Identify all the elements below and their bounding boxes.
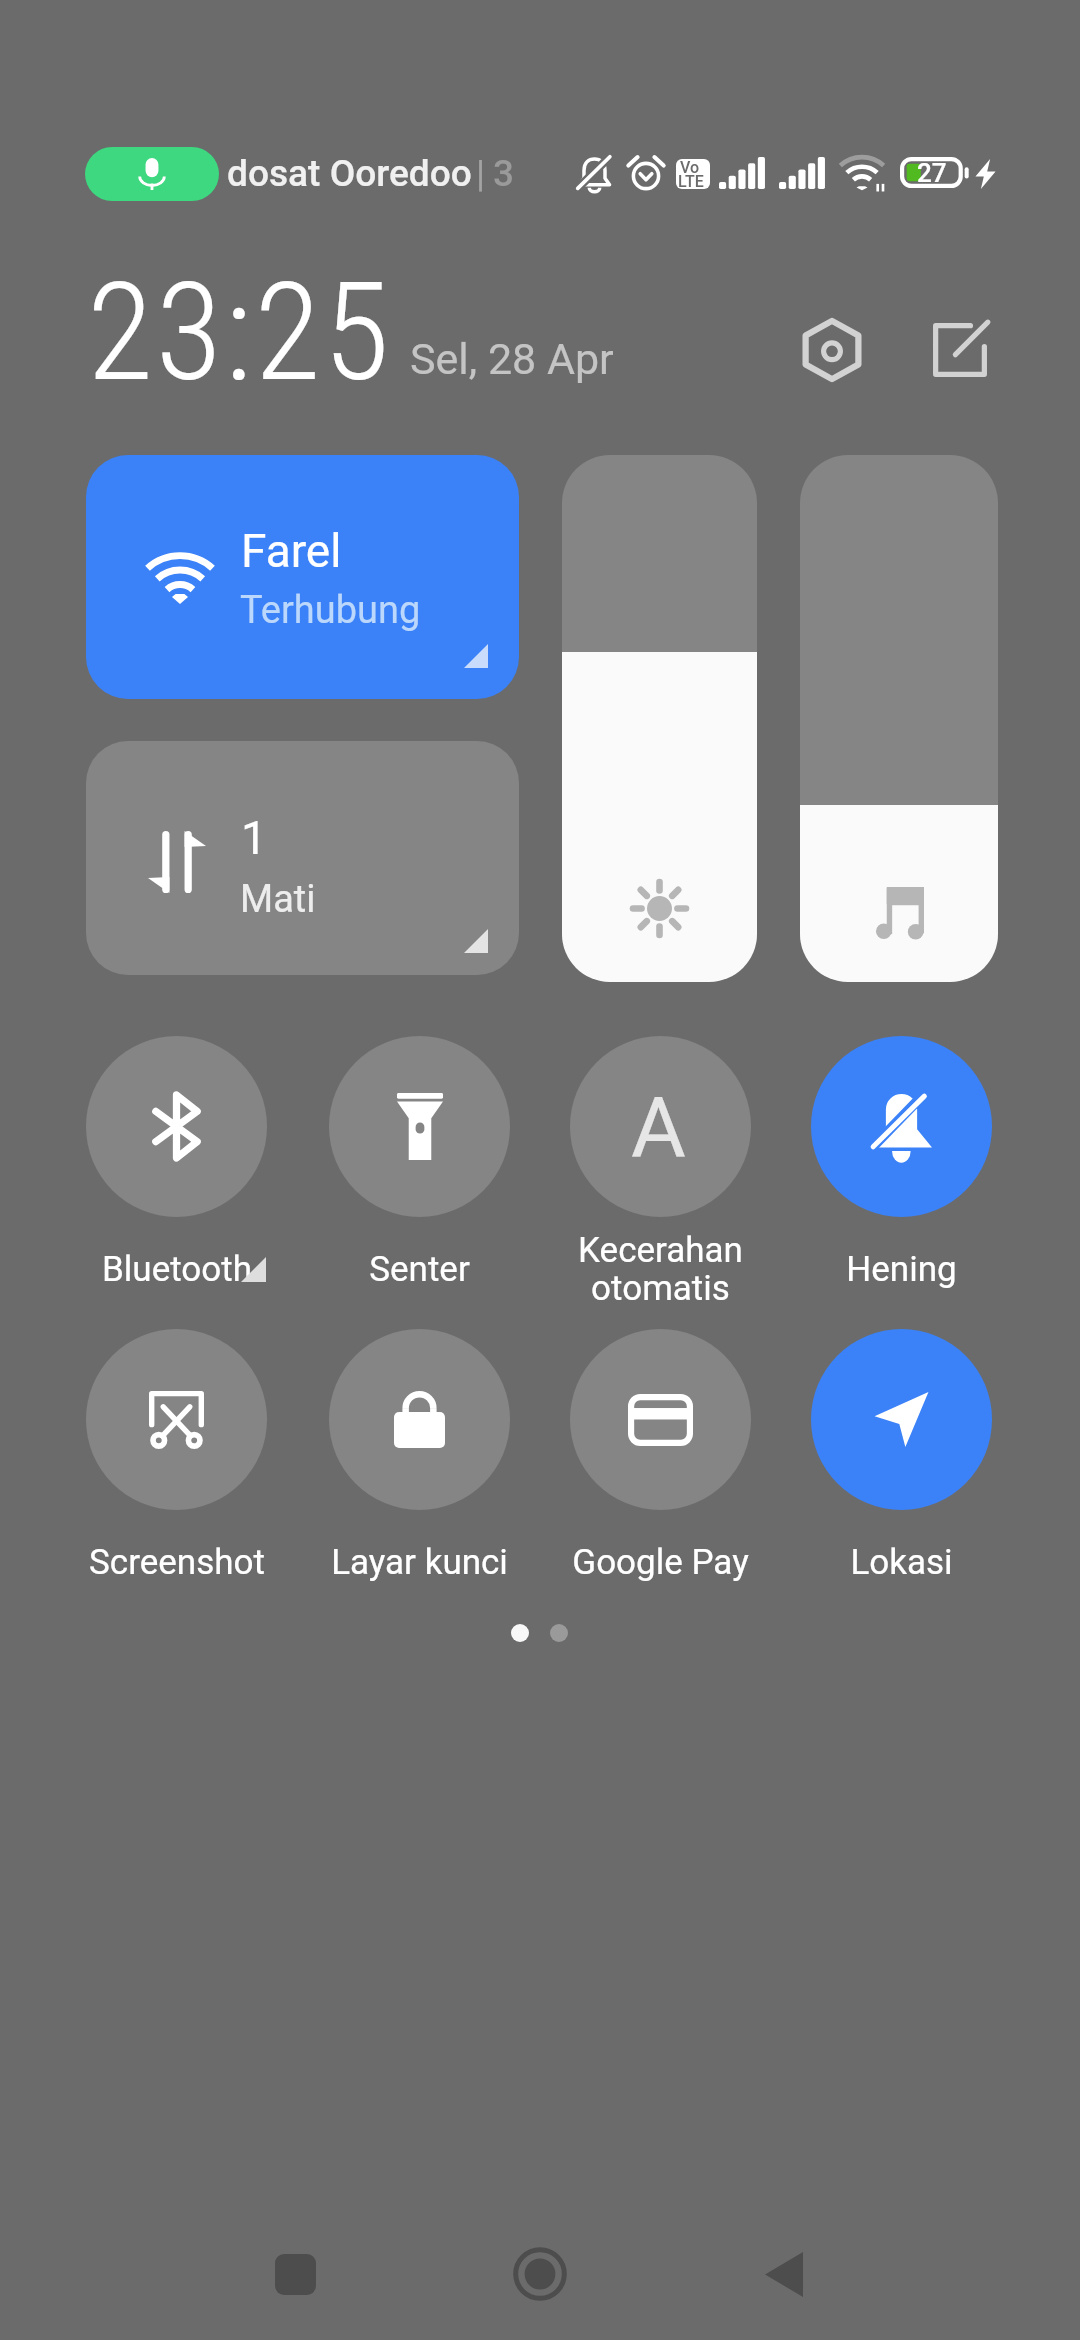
- staticText: Hening: [846, 1249, 957, 1290]
- staticText: |: [476, 152, 486, 195]
- staticText: Layar kunci: [331, 1542, 508, 1583]
- button[interactable]: Brightness: [562, 455, 757, 982]
- button[interactable]: Hening: [804, 1036, 999, 1337]
- staticText: Lokasi: [850, 1542, 953, 1583]
- button[interactable]: 1: [86, 741, 519, 975]
- button[interactable]: Home: [480, 2214, 600, 2334]
- staticText: 23:25: [87, 253, 392, 412]
- button[interactable]: Volume: [800, 455, 998, 982]
- button[interactable]: Edit: [924, 314, 996, 386]
- staticText: Kecerahan otomatis: [578, 1230, 743, 1309]
- staticText: Bluetooth: [102, 1249, 252, 1290]
- button[interactable]: Screenshot: [79, 1329, 274, 1630]
- button[interactable]: Senter: [322, 1036, 517, 1337]
- button[interactable]: Kecerahan otomatis: [563, 1036, 758, 1337]
- button[interactable]: Back: [724, 2214, 844, 2334]
- staticText: 1: [241, 811, 267, 865]
- staticText: Terhubung: [240, 588, 421, 633]
- button[interactable]: Settings: [796, 314, 868, 386]
- button[interactable]: Google Pay: [563, 1329, 758, 1630]
- staticText: Vo: [680, 159, 700, 177]
- staticText: Senter: [369, 1249, 470, 1290]
- button[interactable]: Microphone in use: [85, 147, 219, 201]
- button[interactable]: Recents: [235, 2214, 355, 2334]
- button[interactable]: Lokasi: [804, 1329, 999, 1630]
- staticText: dosat Ooredoo: [227, 152, 472, 195]
- button[interactable]: Layar kunci: [322, 1329, 517, 1630]
- staticText: 3: [493, 152, 515, 195]
- staticText: Farel: [241, 524, 342, 578]
- staticText: A: [631, 1079, 686, 1177]
- staticText: Mati: [240, 877, 316, 922]
- staticText: 27: [917, 158, 947, 188]
- button[interactable]: Bluetooth: [79, 1036, 274, 1337]
- button[interactable]: Farel: [86, 455, 519, 699]
- staticText: Sel, 28 Apr: [410, 334, 614, 384]
- staticText: Google Pay: [572, 1542, 749, 1583]
- staticText: Screenshot: [89, 1542, 265, 1583]
- staticText: LTE: [678, 172, 704, 189]
